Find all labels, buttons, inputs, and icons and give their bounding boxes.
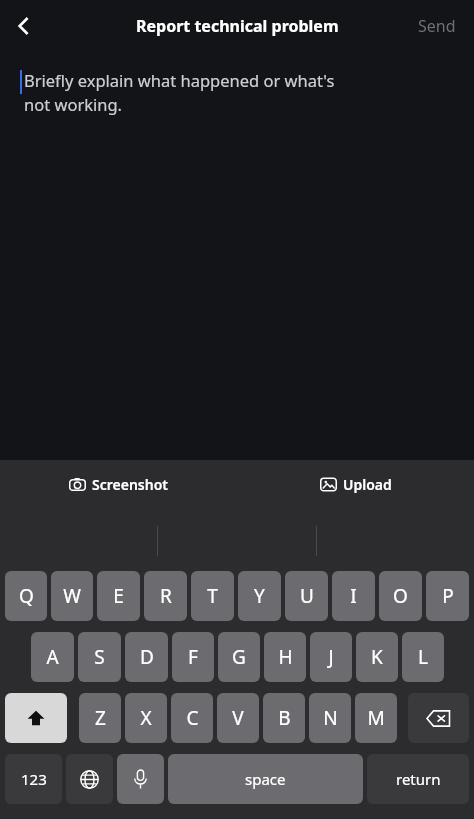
button[interactable]: D	[125, 632, 168, 682]
staticText: Y	[254, 583, 265, 609]
button[interactable]: A	[31, 632, 74, 682]
staticText: X	[140, 705, 152, 731]
button[interactable]: W	[51, 571, 93, 621]
button[interactable]: R	[144, 571, 187, 621]
staticText: O	[393, 583, 408, 609]
staticText: space	[245, 769, 286, 789]
staticText: S	[94, 644, 105, 670]
button[interactable]: U	[285, 571, 328, 621]
button[interactable]: B	[263, 693, 305, 743]
button[interactable]: 123	[5, 754, 62, 804]
button[interactable]: V	[217, 693, 259, 743]
button[interactable]: N	[309, 693, 351, 743]
staticText: T	[207, 583, 218, 609]
button[interactable]: return	[367, 754, 469, 804]
staticText: Q	[19, 583, 34, 609]
button[interactable]: Shift	[5, 693, 67, 743]
staticText: A	[46, 644, 59, 670]
staticText: Screenshot	[92, 475, 168, 494]
staticText: N	[323, 705, 338, 731]
staticText: U	[300, 583, 314, 609]
button[interactable]: Back	[0, 2, 48, 50]
staticText: V	[232, 705, 244, 731]
staticText: J	[328, 644, 334, 670]
button[interactable]: L	[402, 632, 444, 682]
staticText: 123	[21, 769, 47, 789]
button[interactable]: C	[171, 693, 213, 743]
staticText: return	[396, 769, 441, 789]
button[interactable]: M	[355, 693, 397, 743]
staticText: H	[278, 644, 293, 670]
button[interactable]: Y	[238, 571, 281, 621]
button[interactable]: Z	[79, 693, 121, 743]
button[interactable]: K	[356, 632, 398, 682]
staticText: Z	[95, 705, 106, 731]
button[interactable]: Change keyboard language	[66, 754, 113, 804]
button[interactable]: E	[97, 571, 140, 621]
button[interactable]: Backspace	[408, 693, 469, 743]
staticText: M	[367, 705, 385, 731]
staticText: K	[371, 644, 383, 670]
button[interactable]: Screenshot	[59, 469, 178, 500]
staticText: R	[160, 583, 172, 609]
staticText: I	[350, 583, 357, 609]
button[interactable]: Voice input	[117, 754, 164, 804]
button[interactable]: Q	[5, 571, 47, 621]
button[interactable]: G	[218, 632, 260, 682]
staticText: F	[188, 644, 198, 670]
button[interactable]: O	[379, 571, 422, 621]
button[interactable]: X	[125, 693, 167, 743]
staticText: C	[186, 705, 199, 731]
staticText: Upload	[343, 475, 392, 494]
staticText: W	[63, 583, 81, 609]
button[interactable]: space	[168, 754, 363, 804]
staticText: Send	[418, 15, 456, 37]
button[interactable]: H	[264, 632, 306, 682]
staticText: Briefly explain what happened or what's …	[24, 69, 335, 116]
button[interactable]: F	[172, 632, 214, 682]
button[interactable]: S	[78, 632, 121, 682]
button[interactable]: P	[426, 571, 469, 621]
staticText: G	[232, 644, 246, 670]
staticText: P	[442, 583, 454, 609]
button[interactable]: Send	[400, 5, 474, 47]
button[interactable]: J	[310, 632, 352, 682]
staticText: E	[113, 583, 124, 609]
staticText: D	[140, 644, 154, 670]
staticText: B	[278, 705, 291, 731]
button[interactable]: T	[191, 571, 234, 621]
button[interactable]: Upload	[310, 469, 402, 500]
staticText: Report technical problem	[136, 15, 339, 37]
button[interactable]: I	[332, 571, 375, 621]
staticText: L	[418, 644, 428, 670]
